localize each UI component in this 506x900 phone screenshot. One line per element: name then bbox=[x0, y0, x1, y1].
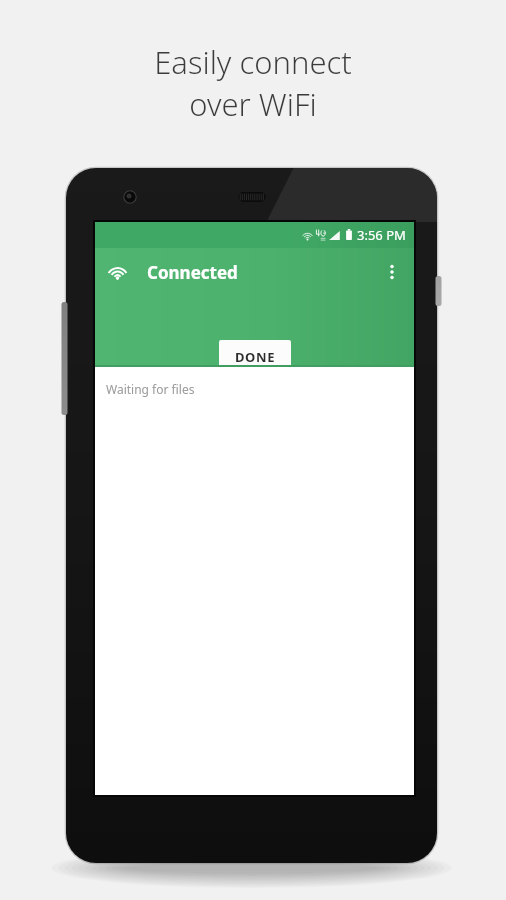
staticText: Waiting for files bbox=[106, 381, 195, 397]
staticText: DONE bbox=[235, 348, 276, 366]
staticText: Connected bbox=[147, 261, 238, 284]
button[interactable]: DONE bbox=[219, 340, 291, 373]
staticText: over WiFi bbox=[189, 83, 317, 125]
button[interactable]: More options bbox=[376, 256, 408, 288]
staticText: 3:56 PM bbox=[357, 226, 406, 244]
staticText: Easily connect bbox=[154, 41, 352, 83]
button[interactable]: Wi-Fi connected bbox=[103, 258, 131, 286]
